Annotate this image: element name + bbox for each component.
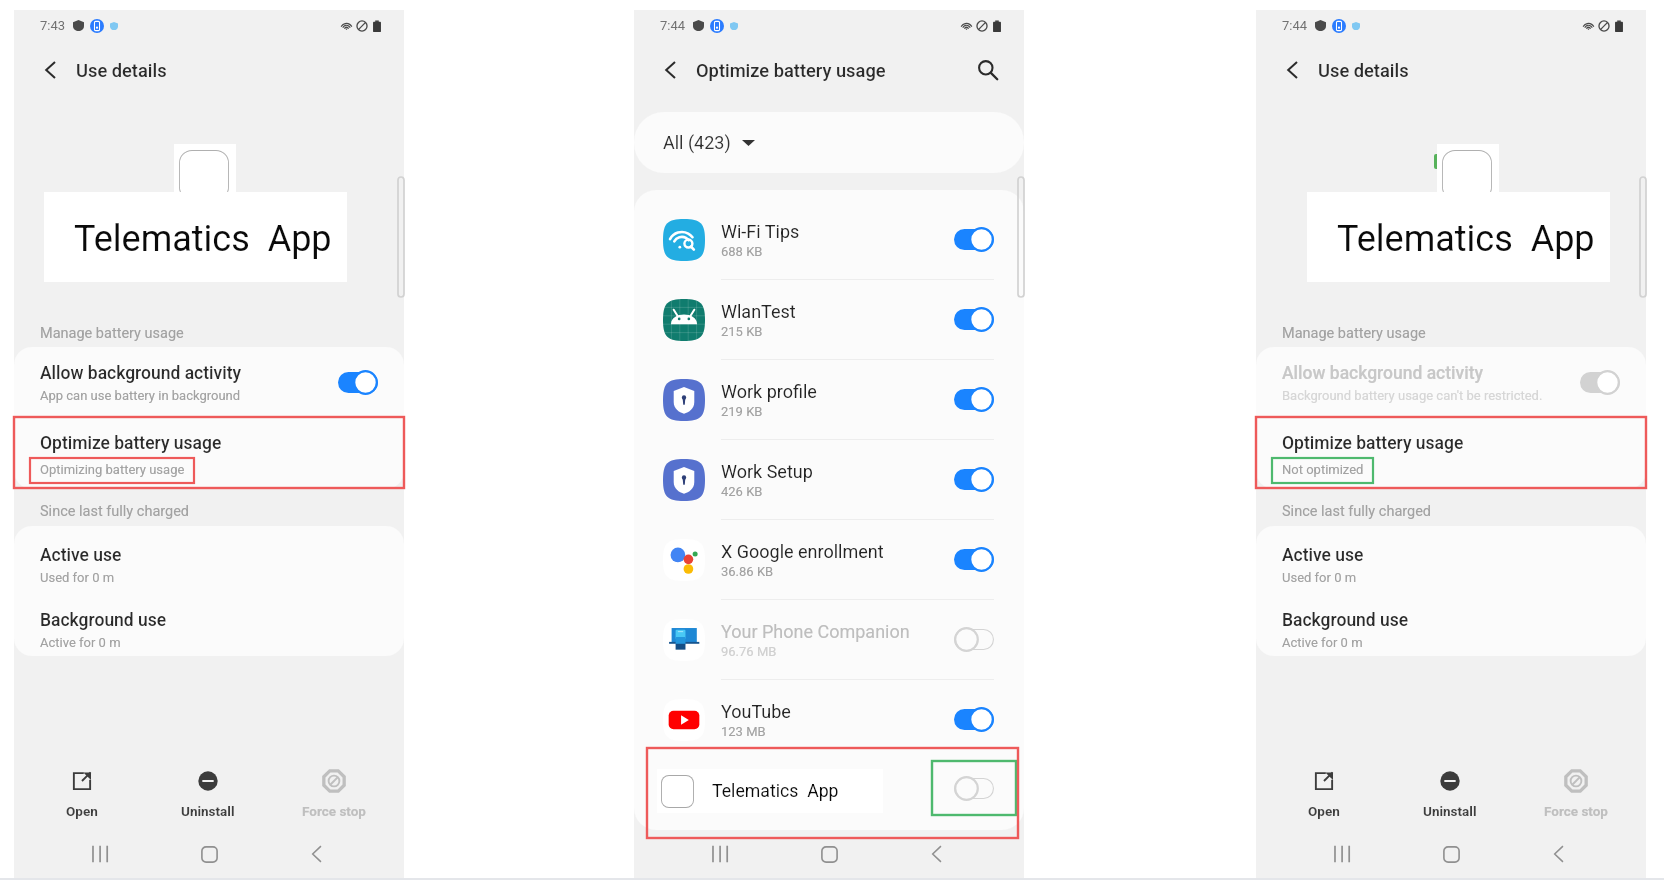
staticText: Force stop [302,803,366,819]
button[interactable] [954,778,994,799]
button[interactable]: Allow background activity [1256,347,1646,418]
staticText: 219 KB [721,404,763,419]
button[interactable]: Back [897,830,977,878]
staticText: 36.86 KB [721,564,774,579]
staticText: Active for 0 m [1282,635,1363,650]
staticText: Not optimized [1282,462,1364,477]
staticText: App can use battery in background [40,388,241,403]
button[interactable]: Uninstall [165,737,251,819]
button[interactable]: All (423) [634,112,1024,173]
staticText: Telematics App [712,781,839,802]
staticText: Active for 0 m [40,635,121,650]
button[interactable]: Force stop [1533,737,1619,819]
button[interactable] [954,709,994,730]
staticText: Manage battery usage [1282,325,1426,342]
staticText: Work profile [721,381,817,402]
button[interactable] [954,549,994,570]
staticText: Used for 0 m [40,570,115,585]
button[interactable]: Back [1276,53,1310,87]
staticText: Wi-Fi Tips [721,221,800,242]
button[interactable]: X Google enrollment [634,520,1024,599]
staticText: Used for 0 m [1282,570,1357,585]
button[interactable]: Back [34,53,68,87]
staticText: Since last fully charged [1282,503,1432,520]
staticText: 7:43 [40,18,66,33]
button[interactable]: Optimize battery usage [14,418,404,489]
button[interactable]: Your Phone Companion [634,600,1024,679]
button[interactable]: Background use [1256,591,1646,656]
button[interactable]: Optimize battery usage [1256,418,1646,489]
staticText: Background use [1282,610,1409,631]
button[interactable] [954,469,994,490]
staticText: All (423) [663,132,731,153]
staticText: Optimize battery usage [696,60,886,81]
staticText: WlanTest [721,301,796,322]
staticText: Optimize battery usage [40,433,222,454]
staticText: 123 MB [721,724,766,739]
staticText: Telematics App [74,218,332,260]
button[interactable]: Home [169,830,249,878]
button[interactable]: Wi-Fi Tips [634,200,1024,279]
staticText: X Google enrollment [721,541,884,562]
staticText: Allow background activity [1282,363,1484,384]
staticText: Background use [40,610,167,631]
button[interactable]: Background use [14,591,404,656]
button[interactable]: Back [654,53,688,87]
staticText: Open [1308,803,1340,819]
button[interactable]: Back [277,830,357,878]
button[interactable]: Recent apps [60,830,140,878]
staticText: YouTube [721,701,791,722]
button[interactable]: Uninstall [1407,737,1493,819]
staticText: Optimize battery usage [1282,433,1464,454]
staticText: Telematics App [1337,218,1595,260]
staticText: Use details [76,60,167,81]
button[interactable] [954,309,994,330]
staticText: Uninstall [181,803,235,819]
staticText: Use details [1318,60,1409,81]
staticText: Uninstall [1423,803,1477,819]
button[interactable]: Search [971,53,1005,87]
staticText: Active use [1282,545,1364,566]
button[interactable]: WlanTest [634,280,1024,359]
staticText: Allow background activity [40,363,242,384]
staticText: 688 KB [721,244,763,259]
button[interactable]: Work Setup [634,440,1024,519]
staticText: Your Phone Companion [721,621,910,642]
staticText: Open [66,803,98,819]
button[interactable] [954,629,994,650]
button[interactable]: Allow background activity [14,347,404,418]
staticText: 7:44 [660,18,686,33]
staticText: 96.76 MB [721,644,777,659]
button[interactable]: Home [1411,830,1491,878]
button[interactable]: Recent apps [1302,830,1382,878]
button[interactable]: Home [789,830,869,878]
staticText: Force stop [1544,803,1608,819]
staticText: Since last fully charged [40,503,190,520]
button[interactable]: Recent apps [680,830,760,878]
staticText: 7:44 [1282,18,1308,33]
staticText: 215 KB [721,324,763,339]
button[interactable]: YouTube [634,680,1024,759]
button[interactable]: Active use [1256,526,1646,591]
button[interactable] [338,372,378,393]
staticText: 426 KB [721,484,763,499]
staticText: Background battery usage can't be restri… [1282,388,1543,403]
staticText: Active use [40,545,122,566]
staticText: Optimizing battery usage [40,462,185,477]
button[interactable]: Work profile [634,360,1024,439]
button[interactable]: Open [1281,737,1367,819]
staticText: Manage battery usage [40,325,184,342]
button[interactable] [954,229,994,250]
button[interactable] [954,389,994,410]
button[interactable] [1580,372,1620,393]
staticText: Work Setup [721,461,813,482]
button[interactable]: Back [1519,830,1599,878]
button[interactable]: Active use [14,526,404,591]
button[interactable]: Open [39,737,125,819]
button[interactable]: Force stop [291,737,377,819]
